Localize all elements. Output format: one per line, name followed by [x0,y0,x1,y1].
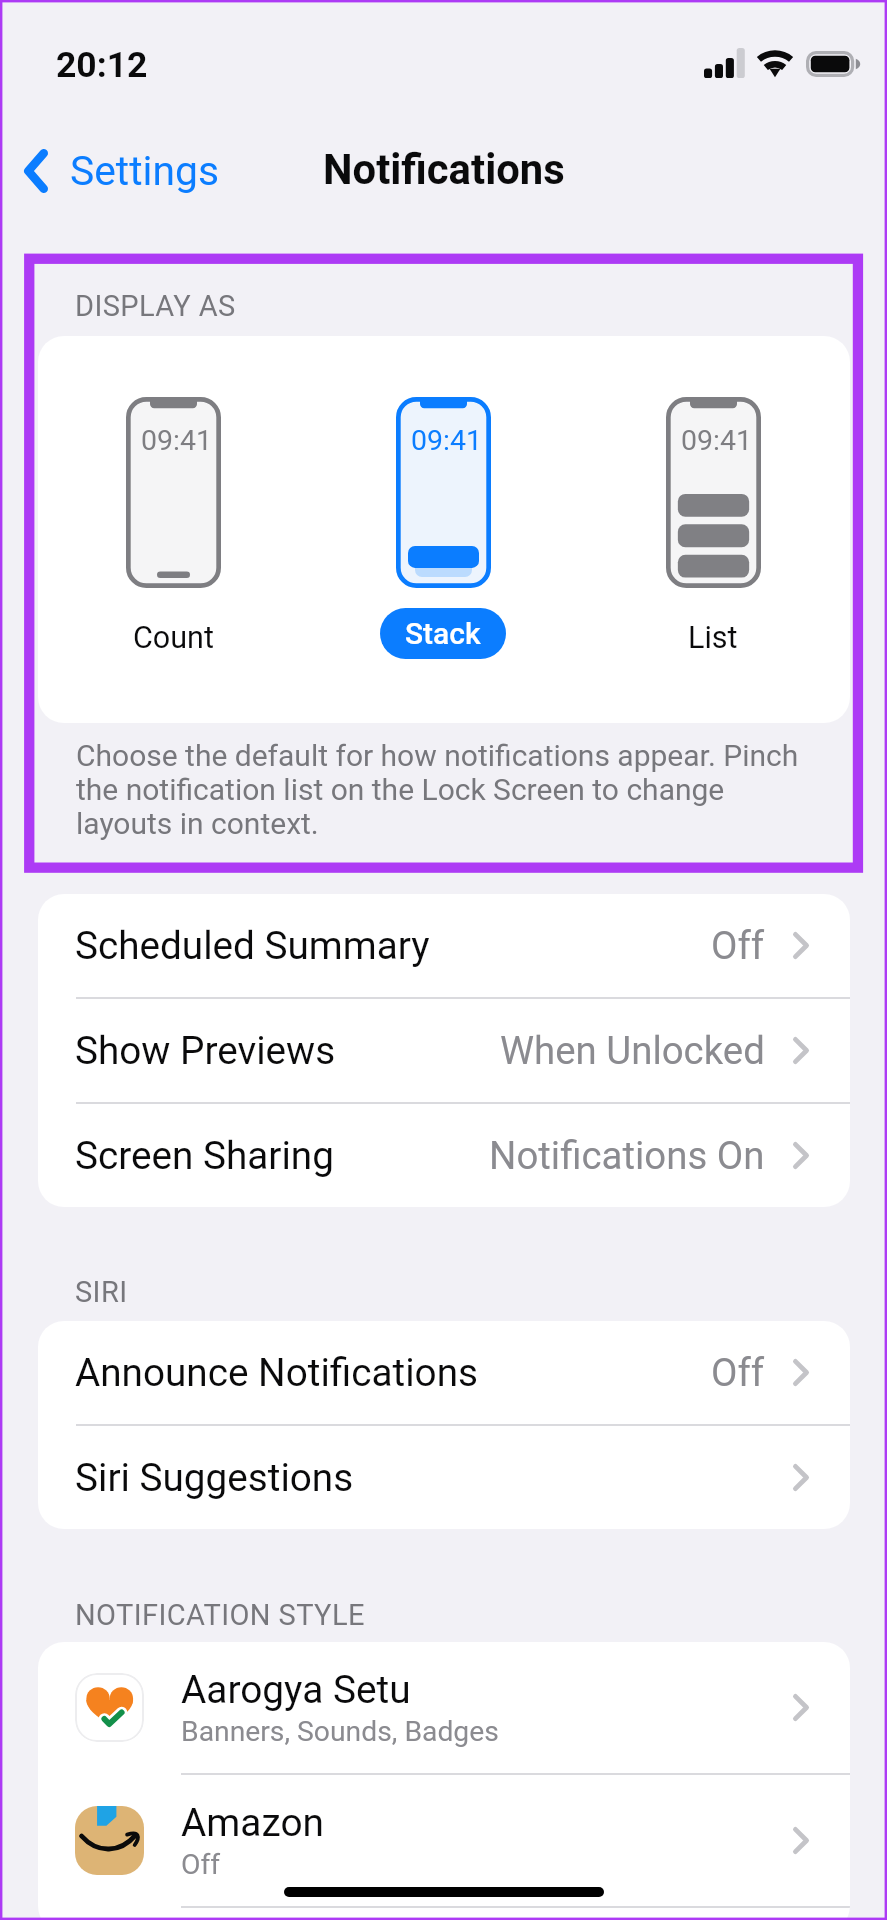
button[interactable]: 09:41 [633,360,793,675]
staticText: Screen Sharing [75,1133,334,1178]
staticText: 09:41 [681,424,752,457]
staticText: Banners, Sounds, Badges [181,1715,499,1748]
staticText: Choose the default for how notifications… [76,738,824,841]
staticText: Show Previews [75,1028,336,1073]
other: Amazon app icon [75,1806,144,1875]
staticText: SIRI [75,1275,128,1309]
staticText: Aarogya Setu [181,1667,411,1712]
staticText: When Unlocked [500,1028,765,1073]
button[interactable]: Show Previews [38,999,850,1102]
button[interactable]: Settings [10,138,233,203]
staticText: Count [133,620,214,656]
button[interactable]: Screen Sharing [38,1104,850,1207]
staticText: Notifications On [489,1133,765,1178]
staticText: 20:12 [56,44,148,86]
staticText: 09:41 [411,424,482,457]
staticText: Off [711,923,765,968]
button[interactable]: 09:41 [93,360,253,675]
staticText: 09:41 [141,424,212,457]
staticText: Off [181,1848,221,1881]
staticText: Stack [405,616,481,651]
staticText: Siri Suggestions [75,1455,354,1500]
button[interactable]: 09:41 [363,360,523,675]
staticText: Settings [70,147,219,195]
staticText: Amazon [181,1800,324,1845]
other: Cellular signal [704,48,745,78]
button[interactable]: Aarogya Setu app icon [38,1642,850,1773]
button[interactable]: Scheduled Summary [38,894,850,997]
other: Aarogya Setu app icon [75,1673,144,1742]
staticText: Announce Notifications [75,1350,479,1395]
staticText: Notifications [323,145,565,194]
button[interactable]: Announce Notifications [38,1321,850,1424]
staticText: Scheduled Summary [75,923,430,968]
staticText: NOTIFICATION STYLE [75,1598,365,1632]
button[interactable]: Siri Suggestions [38,1426,850,1529]
staticText: DISPLAY AS [75,289,236,323]
staticText: List [688,620,738,656]
other: Wi-Fi [757,50,793,77]
button[interactable]: Amazon app icon [38,1775,850,1906]
staticText: Off [711,1350,765,1395]
other: Battery [806,51,861,77]
